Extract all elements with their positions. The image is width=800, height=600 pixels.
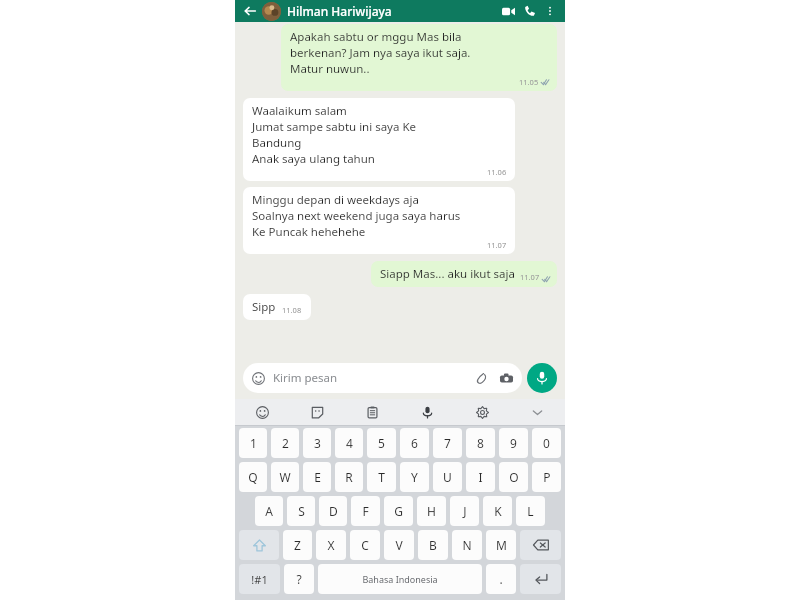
staticText: R [345,469,353,485]
staticText: 5 [378,435,385,451]
button[interactable]: 5 [367,428,396,458]
button[interactable]: Emoji [243,363,522,393]
staticText: 11.05 [519,77,539,87]
staticText: P [543,469,551,485]
staticText: A [265,503,273,519]
button[interactable]: More options [541,2,559,20]
button[interactable]: Attach [473,370,489,386]
button[interactable]: U [433,462,462,492]
button[interactable]: Sipp [243,294,311,320]
staticText: Siapp Mas... aku ikut saja [380,266,515,282]
staticText: 11.07 [520,272,540,282]
button[interactable]: H [417,496,446,526]
button[interactable]: G [384,496,413,526]
button[interactable]: Camera [498,370,514,386]
button[interactable]: A [255,496,283,526]
button[interactable]: Siapp Mas... aku ikut saja [371,261,557,287]
button[interactable]: L [516,496,545,526]
button[interactable]: O [499,462,528,492]
button[interactable]: 4 [335,428,363,458]
button[interactable]: 6 [400,428,429,458]
staticText: Y [411,469,418,485]
button[interactable]: !#1 [239,564,280,594]
staticText: U [443,469,452,485]
staticText: 3 [314,435,321,451]
button[interactable]: Waalaikum salam [243,98,515,181]
staticText: S [298,503,305,519]
staticText: 11.07 [487,240,507,250]
staticText: H [427,503,436,519]
button[interactable]: T [367,462,396,492]
button[interactable]: 1 [239,428,267,458]
button[interactable]: 2 [271,428,299,458]
button[interactable]: Backspace [520,530,561,560]
button[interactable]: Collapse keyboard [510,399,565,425]
button[interactable]: Apakah sabtu or mggu Mas bila [281,24,557,91]
button[interactable]: Clipboard [345,399,400,425]
button[interactable]: Bahasa Indonesia [318,564,482,594]
staticText: Jumat sampe sabtu ini saya Ke [252,119,417,135]
staticText: O [509,469,519,485]
button[interactable]: D [319,496,347,526]
button[interactable]: Z [283,530,312,560]
staticText: Minggu depan di weekdays aja [252,192,419,208]
button[interactable]: Stickers [290,399,345,425]
button[interactable]: Voice input [400,399,455,425]
button[interactable]: Q [239,462,267,492]
staticText: Kirim pesan [273,370,338,386]
button[interactable]: V [384,530,414,560]
staticText: M [496,537,507,553]
button[interactable]: K [483,496,512,526]
button[interactable]: Minggu depan di weekdays aja [243,187,515,254]
button[interactable]: Hilman Hariwijaya [287,3,497,19]
button[interactable]: W [271,462,299,492]
button[interactable]: E [303,462,331,492]
staticText: W [279,469,291,485]
button[interactable]: Video call [497,0,519,22]
staticText: B [429,537,437,553]
staticText: N [462,537,472,553]
button[interactable]: 3 [303,428,331,458]
staticText: 4 [346,435,353,451]
button[interactable]: Back [241,2,259,20]
button[interactable]: R [335,462,363,492]
button[interactable]: ? [284,564,314,594]
button[interactable]: Enter [520,564,561,594]
button[interactable]: Profile photo [262,2,281,21]
staticText: C [361,537,369,553]
button[interactable]: 0 [532,428,561,458]
button[interactable]: Y [400,462,429,492]
button[interactable]: . [486,564,516,594]
button[interactable]: C [350,530,380,560]
staticText: T [378,469,385,485]
staticText: 11.06 [487,167,507,177]
staticText: 6 [411,435,418,451]
staticText: 7 [444,435,451,451]
button[interactable]: J [450,496,479,526]
staticText: L [527,503,534,519]
staticText: K [494,503,502,519]
button[interactable]: 7 [433,428,462,458]
button[interactable]: Voice message [527,363,557,393]
button[interactable]: I [466,462,495,492]
button[interactable]: Emoji [235,399,290,425]
button[interactable]: Voice call [519,0,541,22]
button[interactable]: 8 [466,428,495,458]
staticText: Apakah sabtu or mggu Mas bila [290,29,462,45]
button[interactable]: Shift [239,530,279,560]
button[interactable]: P [532,462,561,492]
staticText: Matur nuwun.. [290,61,370,77]
button[interactable]: Emoji [251,371,266,386]
button[interactable]: 9 [499,428,528,458]
button[interactable]: X [316,530,346,560]
button[interactable]: B [418,530,448,560]
button[interactable]: M [486,530,516,560]
button[interactable]: F [351,496,380,526]
staticText: ? [296,571,302,587]
staticText: I [478,469,483,485]
staticText: Ke Puncak hehehehe [252,224,366,240]
button[interactable]: S [287,496,315,526]
staticText: J [463,503,467,519]
button[interactable]: Settings [455,399,510,425]
button[interactable]: N [452,530,482,560]
